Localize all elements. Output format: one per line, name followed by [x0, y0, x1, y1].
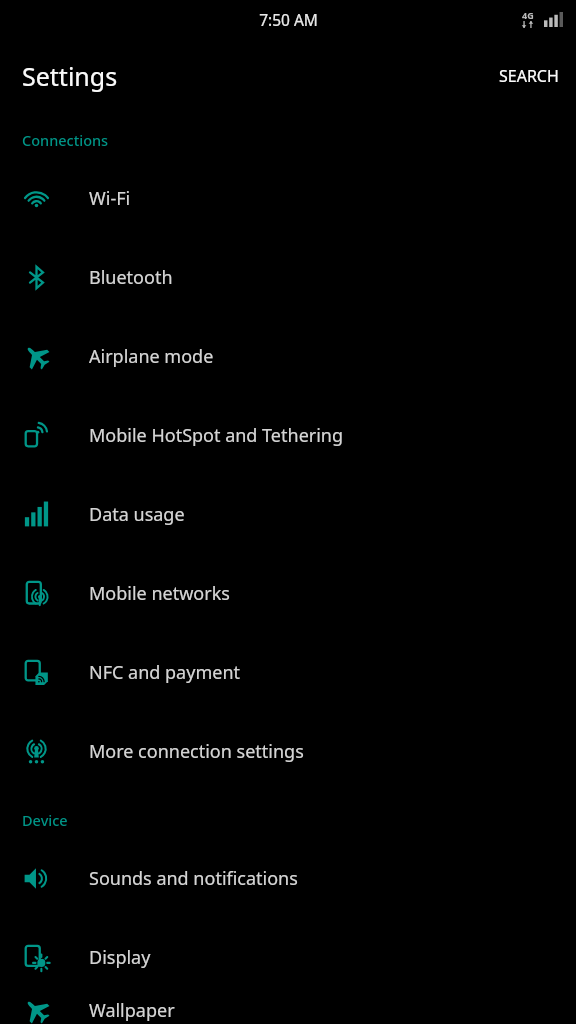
button[interactable]: NFC and payment — [0, 633, 576, 712]
other: Wi-Fi — [23, 185, 50, 212]
button[interactable]: More connection settings — [0, 712, 576, 791]
staticText: 7:50 AM — [259, 9, 318, 30]
staticText: Data usage — [89, 502, 185, 527]
staticText: More connection settings — [89, 739, 304, 764]
staticText: Wi-Fi — [89, 186, 131, 211]
staticText: Airplane mode — [89, 344, 214, 369]
staticText: Sounds and notifications — [89, 866, 298, 891]
button[interactable]: Mobile HotSpot and Tethering — [0, 396, 576, 475]
other: Mobile HotSpot and Tethering — [23, 422, 50, 449]
staticText: Bluetooth — [89, 265, 173, 290]
staticText: Device — [22, 810, 68, 830]
button[interactable]: Display — [0, 918, 576, 997]
button[interactable]: SEARCH — [482, 53, 576, 99]
other: Airplane mode — [23, 343, 50, 370]
other: Bluetooth — [23, 264, 50, 291]
button[interactable]: Wi-Fi — [0, 159, 576, 238]
other: More connection settings — [23, 738, 50, 765]
button[interactable]: Sounds and notifications — [0, 839, 576, 918]
staticText: Mobile HotSpot and Tethering — [89, 423, 344, 448]
button[interactable]: Wallpaper — [0, 997, 576, 1024]
staticText: Settings — [22, 59, 118, 93]
staticText: NFC and payment — [89, 660, 241, 685]
button[interactable]: Data usage — [0, 475, 576, 554]
other: Display — [23, 944, 50, 971]
other: Wallpaper — [23, 997, 50, 1024]
button[interactable]: Airplane mode — [0, 317, 576, 396]
other: Mobile networks — [23, 580, 50, 607]
other: NFC and payment — [23, 659, 50, 686]
staticText: Mobile networks — [89, 581, 230, 606]
staticText: Wallpaper — [89, 998, 175, 1023]
staticText: 4G — [522, 9, 534, 21]
other: Sounds and notifications — [23, 865, 50, 892]
staticText: Display — [89, 945, 151, 970]
staticText: Connections — [22, 130, 109, 150]
staticText: SEARCH — [499, 65, 559, 87]
other: Data usage — [23, 501, 50, 528]
button[interactable]: Mobile networks — [0, 554, 576, 633]
button[interactable]: Bluetooth — [0, 238, 576, 317]
